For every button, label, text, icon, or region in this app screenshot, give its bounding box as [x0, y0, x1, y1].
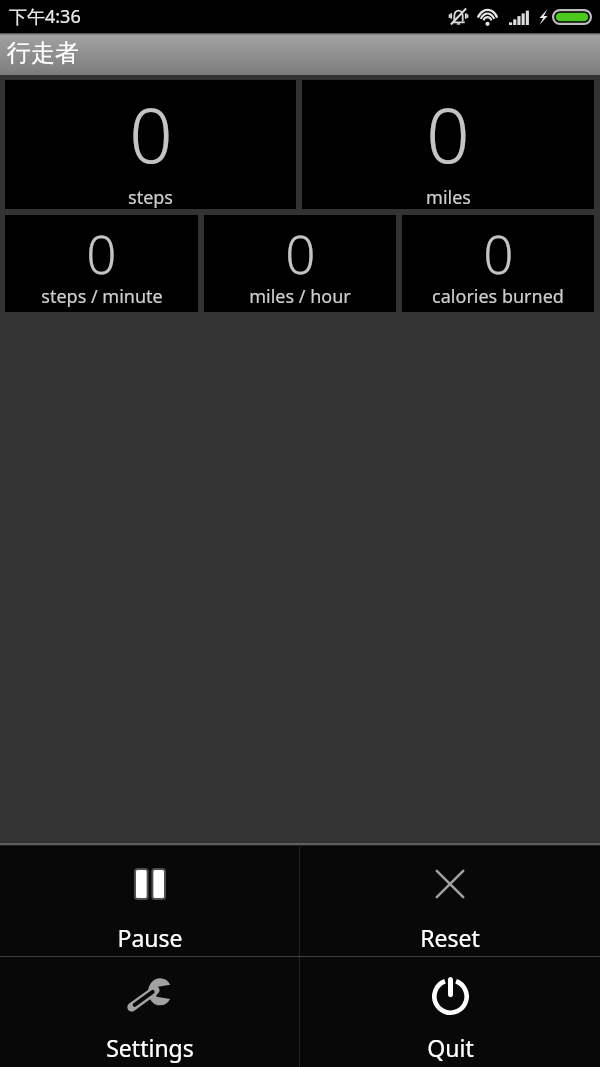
button[interactable]: 0 [402, 215, 594, 312]
staticText: 下午4:36 [9, 4, 81, 29]
staticText: 0 [86, 217, 117, 289]
staticText: Settings [106, 1032, 194, 1063]
button[interactable]: 0 [204, 215, 396, 312]
staticText: 0 [483, 217, 514, 289]
staticText: miles / hour [249, 284, 351, 309]
staticText: calories burned [432, 284, 564, 309]
other: Pause [134, 868, 166, 900]
staticText: Reset [420, 922, 480, 953]
button[interactable]: Settings [0, 957, 299, 1067]
staticText: Quit [427, 1032, 474, 1063]
staticText: Pause [117, 922, 183, 953]
staticText: miles [426, 185, 471, 210]
button[interactable]: 0 [5, 80, 296, 209]
other: Quit [432, 977, 469, 1015]
button[interactable]: Quit [300, 957, 600, 1067]
staticText: 0 [426, 82, 470, 186]
other: Signal [509, 9, 530, 25]
other: Battery [552, 9, 592, 25]
button[interactable]: 0 [302, 80, 594, 209]
staticText: 行走者 [7, 38, 79, 68]
staticText: 0 [129, 82, 173, 186]
staticText: 0 [285, 217, 316, 289]
staticText: steps / minute [41, 284, 163, 309]
button[interactable]: 0 [5, 215, 198, 312]
other: Settings [127, 978, 172, 1014]
button[interactable]: Reset [300, 846, 600, 956]
other: Silent mode [449, 8, 468, 25]
other: Charging [539, 9, 548, 25]
staticText: steps [128, 185, 173, 210]
button[interactable]: Pause [0, 846, 299, 956]
other: Reset [435, 869, 465, 899]
other: Wi-Fi [477, 9, 498, 25]
